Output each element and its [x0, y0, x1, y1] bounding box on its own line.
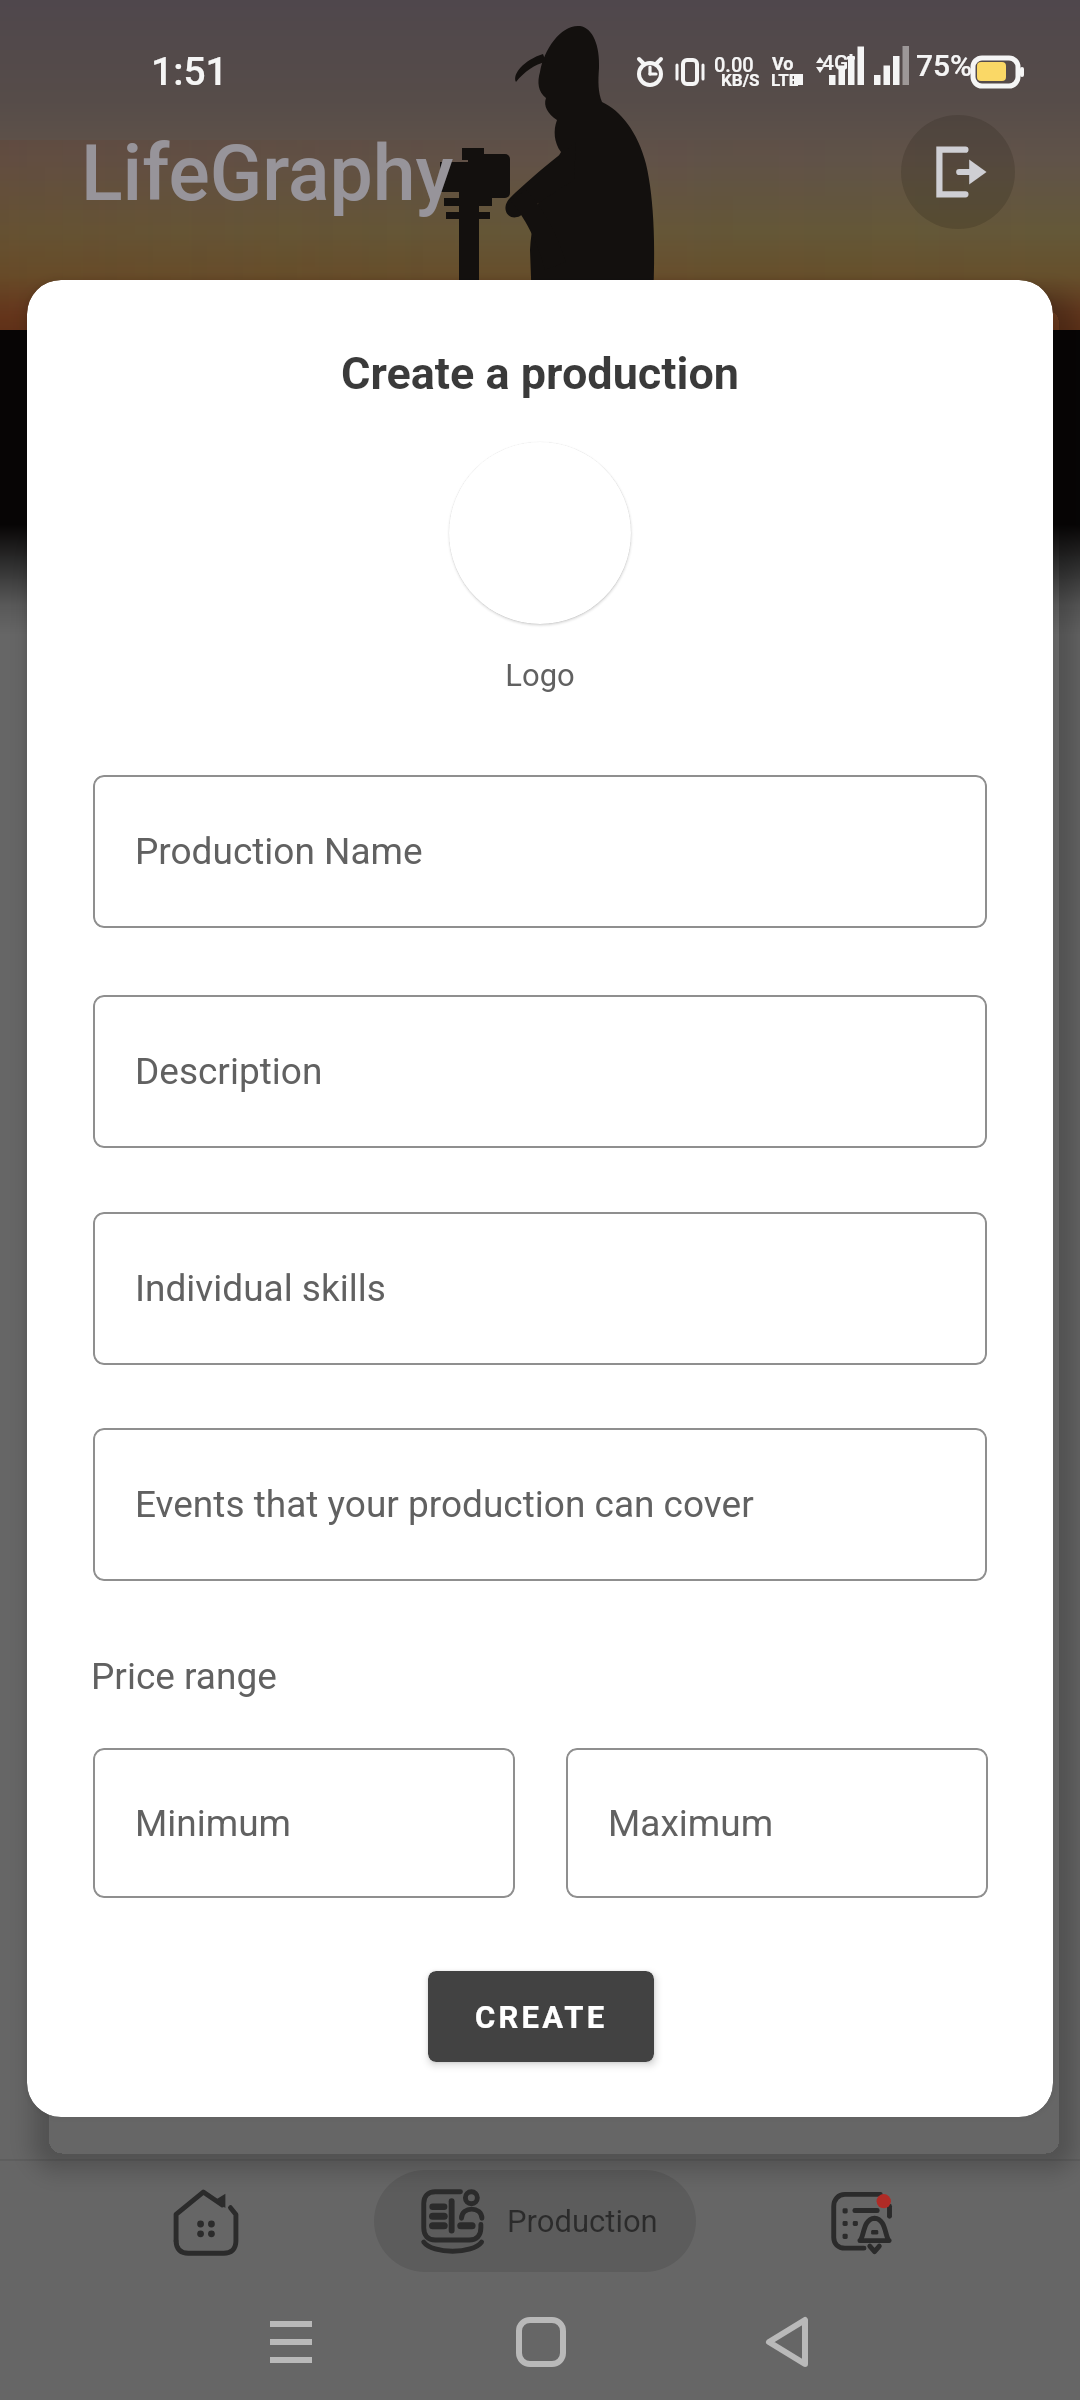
button[interactable]: Individual skills [93, 1212, 987, 1365]
staticText: Description [135, 1050, 323, 1093]
button[interactable]: Notifications [809, 2169, 919, 2279]
button[interactable]: Home [151, 2169, 261, 2279]
staticText: Events that your production can cover [135, 1483, 754, 1526]
staticText: Create a production [27, 347, 1053, 400]
staticText: Production [507, 2203, 658, 2239]
button[interactable]: Production Name [93, 775, 987, 928]
button[interactable]: Log out [901, 115, 1015, 229]
staticText: LifeGraphy [81, 129, 454, 219]
button[interactable]: Production [374, 2170, 696, 2272]
button[interactable]: CREATE [428, 1971, 654, 2062]
button[interactable]: Description [93, 995, 987, 1148]
staticText: 4G [822, 51, 849, 76]
staticText: LTE [771, 70, 799, 90]
staticText: Logo [27, 657, 1053, 693]
staticText: Maximum [608, 1802, 774, 1845]
staticText: KB/S [721, 70, 760, 90]
button[interactable]: Maximum [566, 1748, 988, 1898]
staticText: 0.00 [714, 53, 754, 76]
button[interactable]: Add logo [449, 442, 631, 624]
staticText: Price range [91, 1655, 277, 1698]
staticText: Minimum [135, 1802, 292, 1845]
staticText: Production Name [135, 830, 423, 873]
button[interactable]: Events that your production can cover [93, 1428, 987, 1581]
button[interactable]: Minimum [93, 1748, 515, 1898]
staticText: 1:51 [151, 49, 228, 95]
staticText: Vo [772, 53, 794, 74]
staticText: 75% [916, 48, 973, 83]
staticText: Individual skills [135, 1267, 386, 1310]
staticText: CREATE [475, 1999, 608, 2035]
